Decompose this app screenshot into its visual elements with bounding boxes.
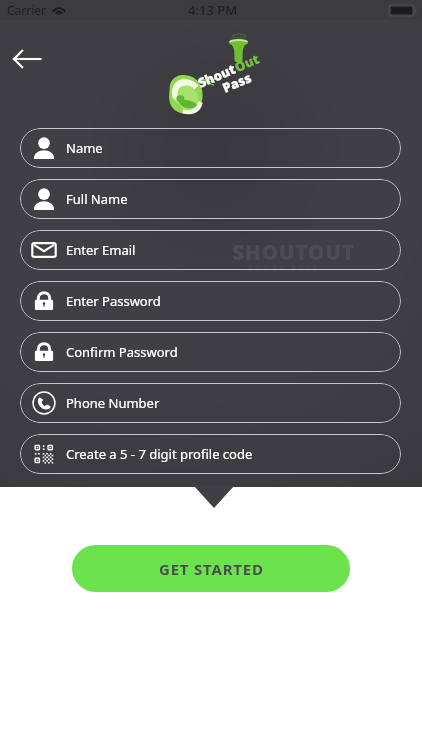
button[interactable]: Enter Password [20,281,401,321]
staticText: Full Name [66,190,128,208]
staticText: Confirm Password [66,343,178,361]
button[interactable]: Confirm Password [20,332,401,372]
staticText: GET STARTED [159,559,264,579]
staticText: 4:13 PM [188,1,238,19]
staticText: Out [232,49,263,76]
button[interactable]: Enter Email [20,230,401,270]
button[interactable]: Name [20,128,401,168]
button[interactable]: Create a 5 - 7 digit profile code [20,434,401,474]
staticText: Carrier [7,2,47,18]
staticText: Create a 5 - 7 digit profile code [66,445,253,463]
button[interactable]: Phone Number [20,383,401,423]
staticText: Phone Number [66,394,160,412]
staticText: SHOUTOUT [232,238,355,267]
staticText: P O W E R P A S S [248,262,317,273]
staticText: Shout [195,59,239,92]
button[interactable]: Back [5,39,49,79]
button[interactable]: GET STARTED [72,545,350,592]
staticText: Enter Email [66,241,136,259]
staticText: Name [66,139,103,157]
staticText: Pass [220,68,254,97]
button[interactable]: Full Name [20,179,401,219]
staticText: Enter Password [66,292,161,310]
